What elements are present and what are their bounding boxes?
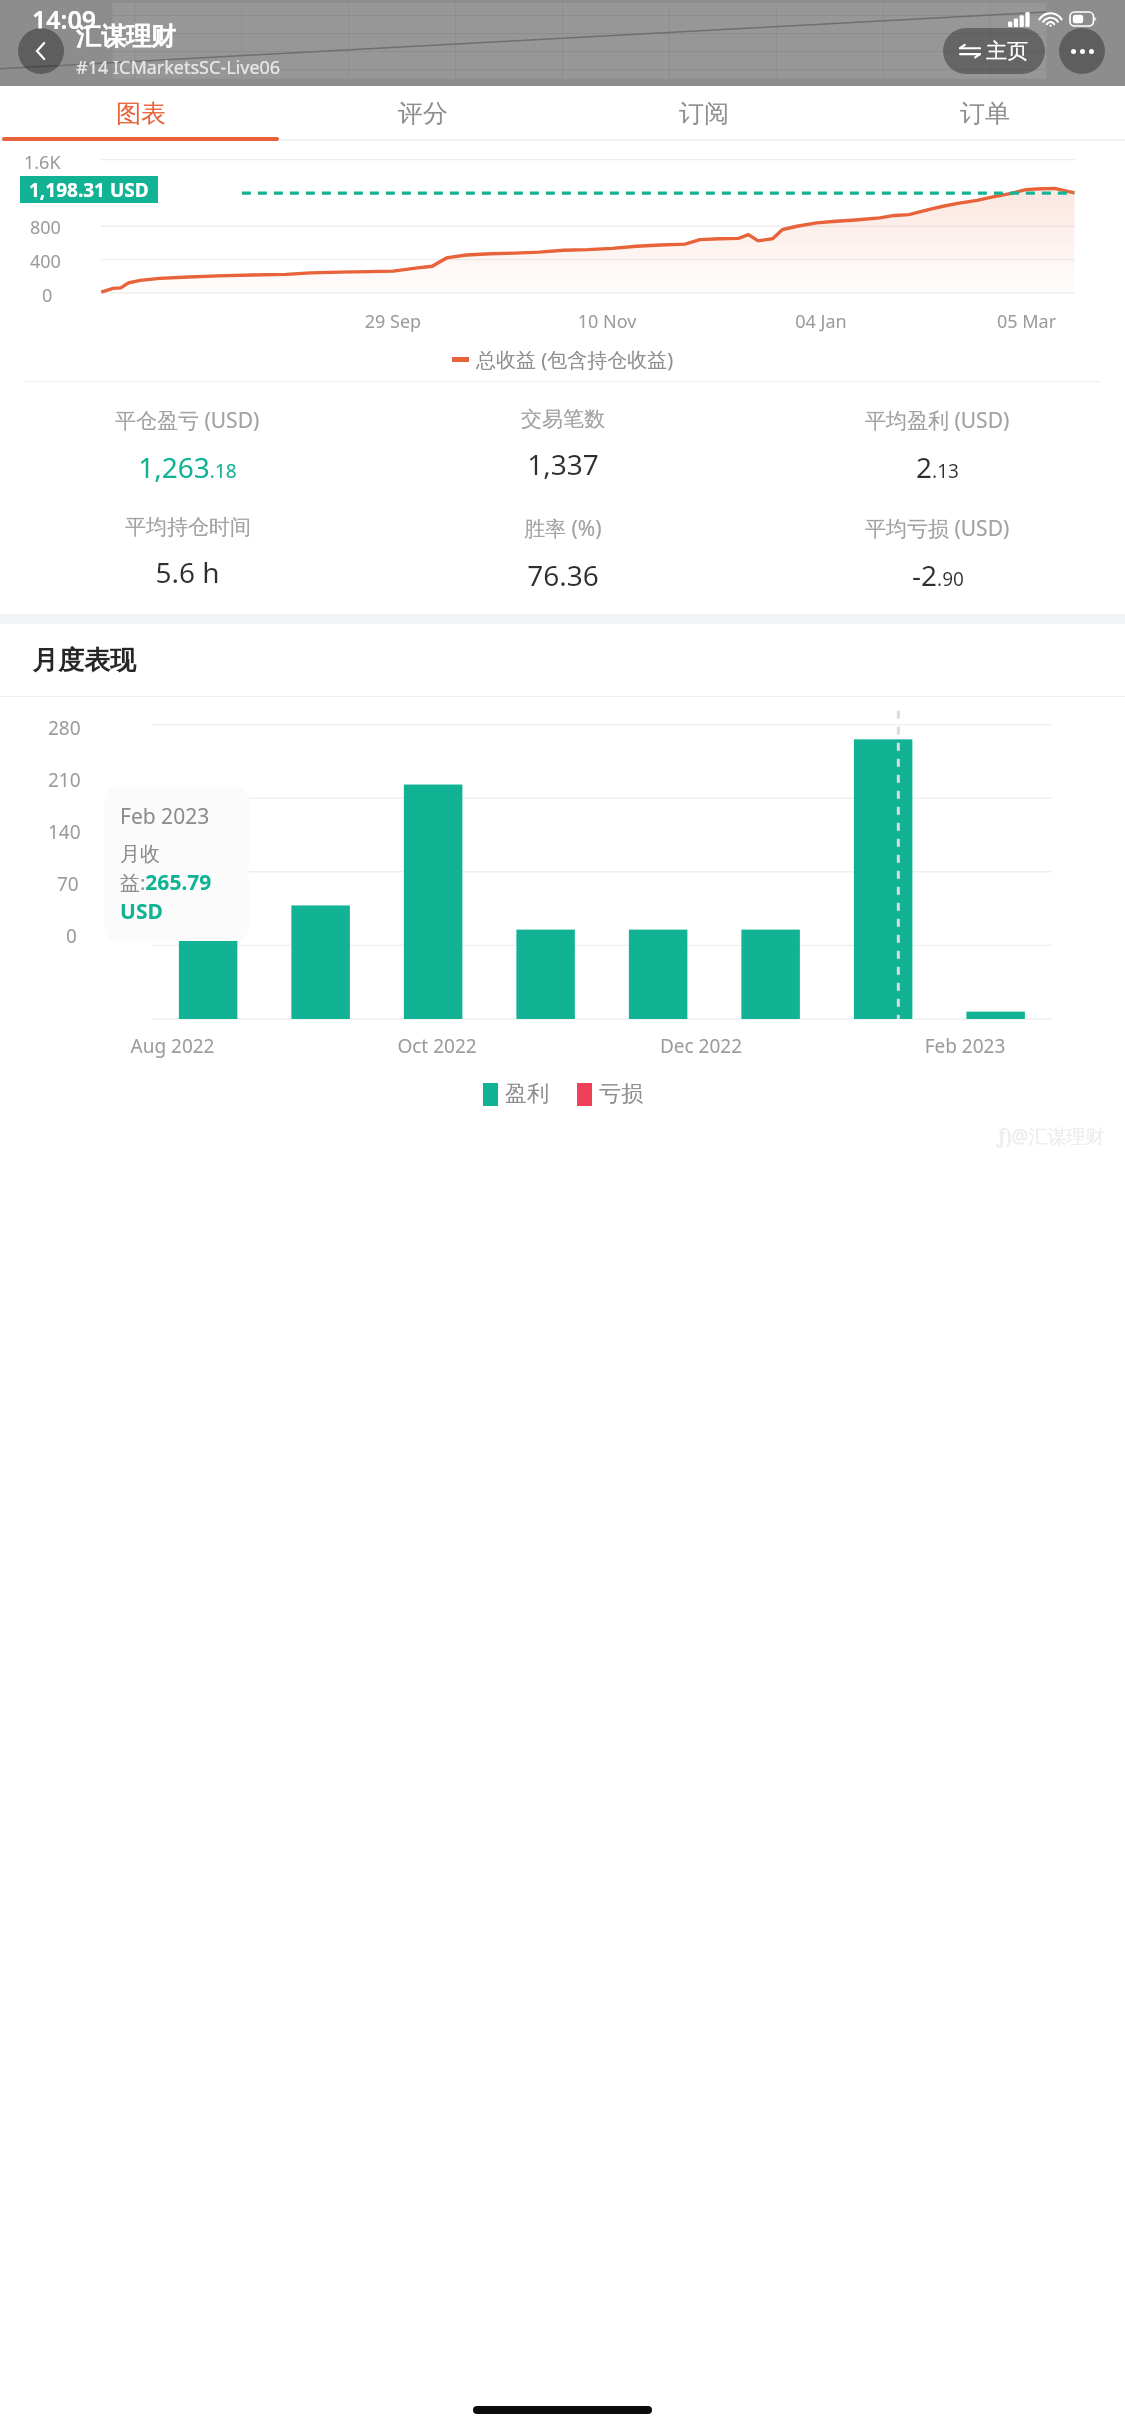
button[interactable]: 评分 xyxy=(282,86,563,141)
staticText: 平均盈利 (USD) xyxy=(865,406,1010,435)
staticText: 1,263.18 xyxy=(138,448,237,486)
staticText: 胜率 (%) xyxy=(524,514,602,543)
button[interactable]: Back xyxy=(18,28,64,74)
staticText: 280 xyxy=(48,715,81,741)
staticText: 400 xyxy=(30,249,61,274)
staticText: 总收益 (包含持仓收益) xyxy=(476,346,674,373)
staticText: 210 xyxy=(48,767,81,793)
staticText: 平均持仓时间 xyxy=(125,514,251,540)
staticText: 月收益:265.79 USD xyxy=(120,842,249,926)
staticText: 汇谋理财 xyxy=(76,21,176,52)
staticText: #14 ICMarketsSC-Live06 xyxy=(76,55,281,80)
staticText: 平均亏损 (USD) xyxy=(865,514,1010,543)
staticText: 盈利 xyxy=(505,1080,549,1108)
staticText: 亏损 xyxy=(599,1080,643,1108)
button[interactable]: 主页 xyxy=(943,28,1045,74)
staticText: 800 xyxy=(30,215,61,240)
staticText: ƒ)@汇谋理财 xyxy=(997,1123,1105,1149)
staticText: 图表 xyxy=(116,98,166,129)
staticText: Aug 2022 xyxy=(40,1033,305,1059)
staticText: 5.6 h xyxy=(155,553,220,591)
staticText: 2.13 xyxy=(916,448,959,486)
button[interactable]: More options xyxy=(1059,28,1105,74)
staticText: 05 Mar xyxy=(928,309,1125,334)
staticText: -2.90 xyxy=(912,556,964,594)
staticText: 评分 xyxy=(398,98,448,129)
button[interactable]: 订单 xyxy=(844,86,1125,141)
staticText: 主页 xyxy=(986,38,1028,64)
staticText: 0 xyxy=(66,923,77,949)
staticText: 1,337 xyxy=(527,445,599,483)
staticText: 04 Jan xyxy=(714,309,928,334)
staticText: 订单 xyxy=(960,98,1010,129)
staticText: 平仓盈亏 (USD) xyxy=(115,406,260,435)
staticText: 1,198.31 USD xyxy=(29,177,149,203)
staticText: Dec 2022 xyxy=(569,1033,833,1059)
staticText: Oct 2022 xyxy=(305,1033,569,1059)
staticText: 10 Nov xyxy=(500,309,714,334)
staticText: 1.6K xyxy=(24,150,61,175)
staticText: 14:09 xyxy=(32,2,97,36)
staticText: 订阅 xyxy=(679,98,729,129)
staticText: 29 Sep xyxy=(286,309,500,334)
button[interactable]: 订阅 xyxy=(563,86,844,141)
staticText: 月度表现 xyxy=(32,644,136,677)
staticText: 76.36 xyxy=(527,556,599,594)
button[interactable]: 图表 xyxy=(0,86,282,141)
staticText: Feb 2023 xyxy=(833,1033,1097,1059)
staticText: 0 xyxy=(42,283,53,308)
staticText: 70 xyxy=(57,871,79,897)
staticText: Feb 2023 xyxy=(120,802,210,831)
staticText: 交易笔数 xyxy=(521,406,605,432)
staticText: 140 xyxy=(48,819,81,845)
